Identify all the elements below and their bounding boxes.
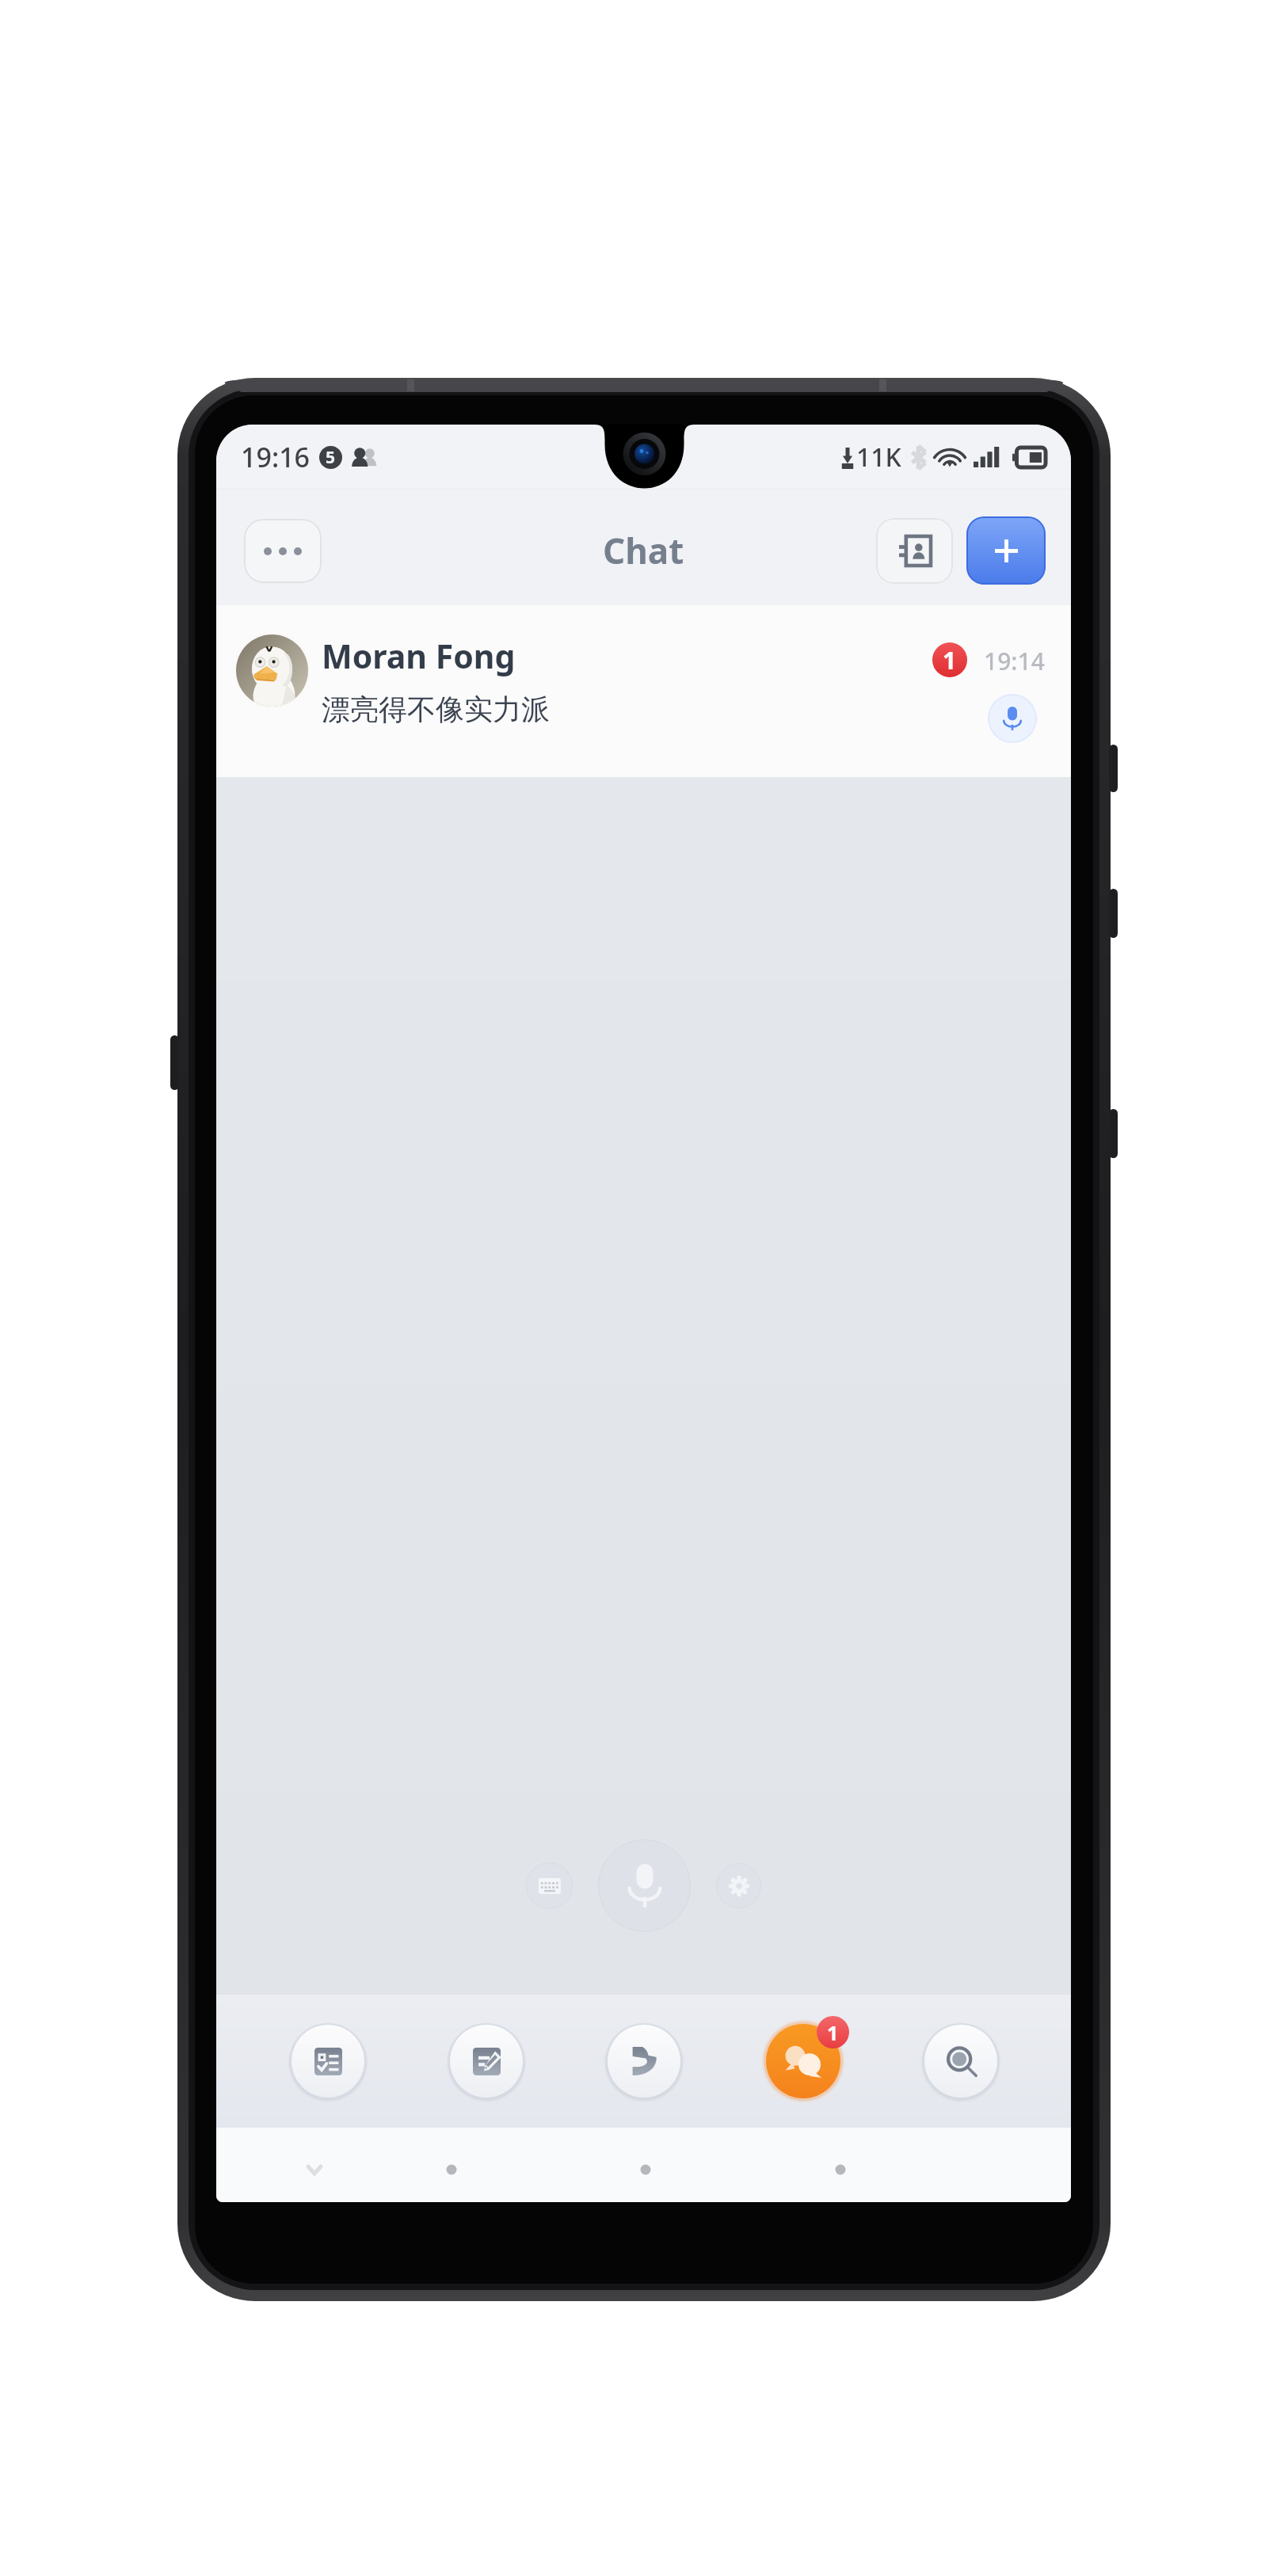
- staticText: 漂亮得不像实力派: [322, 692, 550, 727]
- button[interactable]: Voice message: [988, 694, 1037, 743]
- button[interactable]: Moran Fong: [216, 605, 1071, 777]
- staticText: Moran Fong: [322, 634, 516, 678]
- staticText: 19:14: [984, 645, 1045, 677]
- button[interactable]: Voice input: [598, 1839, 691, 1932]
- staticText: Chat: [603, 527, 684, 574]
- staticText: 5: [326, 446, 336, 469]
- button[interactable]: Tasks: [288, 2022, 368, 2101]
- button[interactable]: Keyboard: [526, 1862, 573, 1909]
- button[interactable]: Add: [966, 516, 1046, 585]
- staticText: 1: [827, 2019, 839, 2046]
- button[interactable]: Search: [921, 2022, 1000, 2101]
- staticText: 19:16: [241, 439, 311, 475]
- staticText: 1: [943, 644, 957, 676]
- button[interactable]: Settings: [716, 1863, 761, 1908]
- button[interactable]: More options: [244, 519, 322, 583]
- button[interactable]: Chats: [762, 2020, 844, 2102]
- button[interactable]: Contacts: [876, 518, 953, 584]
- button[interactable]: QQ: [604, 2022, 684, 2101]
- button[interactable]: Compose: [447, 2022, 526, 2101]
- staticText: 11K: [856, 440, 901, 474]
